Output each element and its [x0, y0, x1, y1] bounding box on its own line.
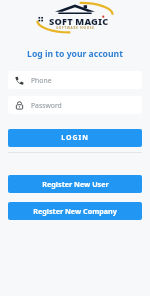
button[interactable]: Register New User — [8, 175, 142, 193]
staticText: Password — [31, 101, 62, 110]
staticText: SOFT MAGIC — [49, 15, 109, 28]
staticText: LOGIN — [61, 133, 89, 143]
staticText: Log in to your account — [27, 48, 123, 60]
button[interactable]: Register New Company — [8, 202, 142, 220]
button[interactable]: LOGIN — [8, 129, 142, 147]
other: Password — [15, 101, 24, 110]
button[interactable]: Password — [8, 96, 142, 114]
staticText: Register New User — [42, 179, 109, 189]
staticText: Register New Company — [33, 206, 117, 216]
staticText: Phone — [31, 76, 52, 85]
button[interactable]: Phone number — [8, 71, 142, 89]
staticText: SOFTWARE HOUSE — [56, 26, 95, 30]
other: Phone number — [15, 76, 24, 85]
